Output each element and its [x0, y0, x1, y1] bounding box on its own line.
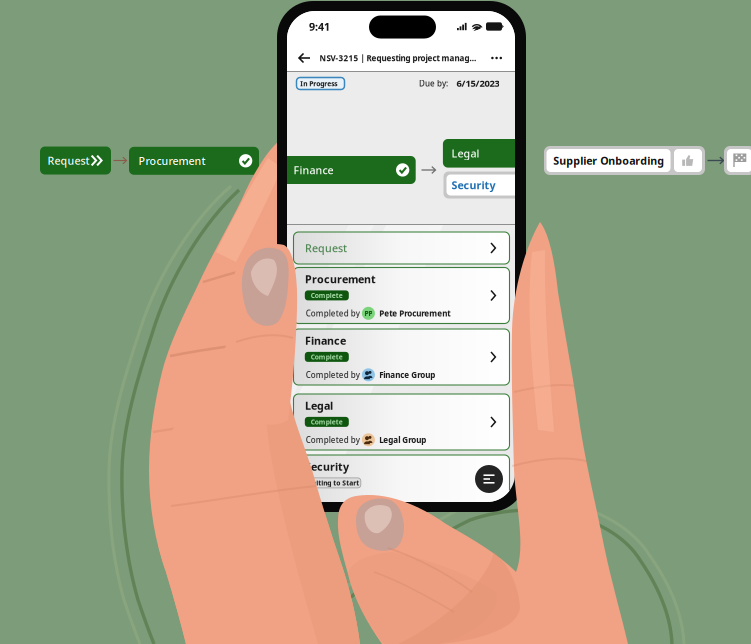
button[interactable]: Request	[293, 232, 509, 264]
button[interactable]: Back	[293, 47, 316, 69]
button[interactable]: Legal	[293, 394, 509, 450]
staticText: Complete	[311, 291, 343, 300]
staticText: Complete	[311, 417, 343, 426]
button[interactable]: Security	[443, 171, 543, 198]
staticText: Security	[451, 178, 495, 192]
button[interactable]: Menu	[475, 465, 503, 493]
staticText: Finance	[305, 333, 346, 348]
staticText: Waiting to Start	[306, 478, 359, 487]
staticText: Procurement	[305, 272, 376, 286]
staticText: Pete Procurement	[379, 308, 450, 319]
button[interactable]: Security	[293, 455, 509, 511]
staticText: NSV-3215 | Requesting project manag…	[320, 53, 477, 63]
staticText: Completed by |	[306, 308, 368, 319]
staticText: Completed by |	[306, 434, 368, 445]
button[interactable]: Procurement	[129, 147, 259, 175]
button[interactable]: Finish	[724, 146, 751, 175]
staticText: In Progress	[300, 79, 337, 88]
staticText: 6/15/2023	[456, 77, 499, 89]
staticText: Request	[47, 153, 89, 168]
staticText: Procurement	[139, 154, 206, 168]
staticText: Due by:	[419, 78, 448, 89]
staticText: Legal Group	[379, 434, 426, 445]
staticText: Completed by |	[306, 369, 368, 380]
staticText: Legal	[451, 146, 479, 160]
staticText: PP	[364, 309, 372, 318]
button[interactable]: Finance	[269, 156, 416, 184]
staticText: 9:41	[309, 19, 330, 34]
staticText: Finance	[293, 163, 333, 177]
button[interactable]: More options	[486, 47, 507, 68]
button[interactable]: Procurement	[293, 267, 509, 323]
staticText: Complete	[311, 352, 343, 361]
staticText: Request	[305, 241, 347, 255]
button[interactable]: Request	[40, 146, 111, 174]
staticText: Supplier Onboarding	[553, 153, 664, 168]
button[interactable]: Legal	[443, 139, 543, 168]
staticText: Finance Group	[379, 369, 435, 380]
staticText: Security	[305, 459, 349, 474]
button[interactable]: Finance	[293, 329, 509, 385]
button[interactable]: Supplier Onboarding	[544, 146, 705, 175]
staticText: Legal	[305, 398, 333, 413]
